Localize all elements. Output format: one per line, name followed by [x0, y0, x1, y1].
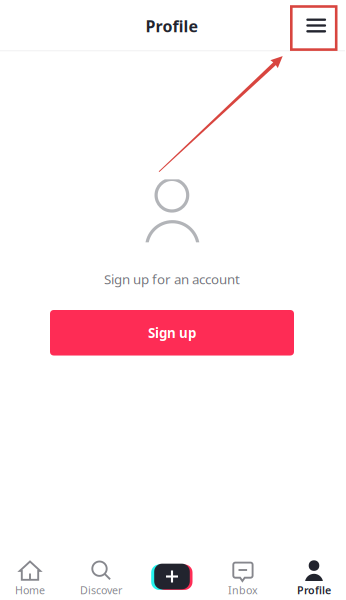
staticText: Discover	[80, 583, 122, 597]
staticText: Inbox	[228, 583, 258, 597]
button[interactable]: Home	[0, 553, 63, 600]
staticText: Home	[15, 583, 45, 597]
staticText: Sign up for an account	[104, 270, 240, 288]
button[interactable]: Discover	[68, 553, 134, 600]
button[interactable]: Inbox	[210, 553, 276, 600]
button[interactable]: Create	[139, 553, 205, 600]
staticText: Profile	[145, 15, 198, 37]
staticText: Profile	[297, 583, 331, 597]
button[interactable]: Menu	[293, 3, 339, 48]
button[interactable]: Sign up	[50, 310, 294, 355]
staticText: Sign up	[148, 324, 196, 342]
button[interactable]: Profile	[281, 553, 346, 600]
